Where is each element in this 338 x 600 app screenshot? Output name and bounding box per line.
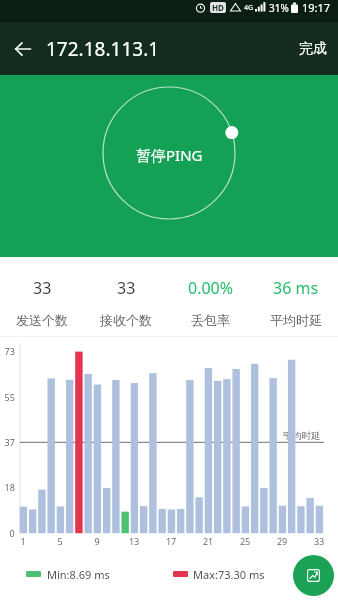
staticText: 丢包率 bbox=[191, 312, 230, 328]
staticText: 平均时延 bbox=[270, 312, 322, 328]
button[interactable]: Show chart details bbox=[293, 555, 334, 596]
button[interactable]: 0.00% bbox=[168, 277, 253, 328]
staticText: 暂停PING bbox=[136, 145, 203, 165]
staticText: 4G bbox=[244, 3, 254, 13]
staticText: HD bbox=[212, 2, 224, 13]
button[interactable]: 完成 bbox=[288, 22, 338, 75]
staticText: 33 bbox=[33, 277, 52, 299]
button[interactable]: 36 ms bbox=[253, 277, 338, 328]
staticText: Min:8.69 ms bbox=[47, 567, 110, 582]
staticText: 19:17 bbox=[302, 0, 331, 15]
button[interactable] bbox=[0, 337, 338, 552]
staticText: 33 bbox=[117, 277, 136, 299]
staticText: 发送个数 bbox=[16, 312, 68, 328]
staticText: 172.18.113.1 bbox=[46, 36, 160, 62]
staticText: 完成 bbox=[299, 40, 327, 58]
staticText: 0.00% bbox=[188, 277, 234, 299]
staticText: 31% bbox=[269, 1, 289, 15]
staticText: 接收个数 bbox=[100, 312, 152, 328]
button[interactable]: 33 bbox=[84, 277, 168, 328]
button[interactable]: 暂停PING bbox=[94, 78, 244, 228]
staticText: 36 ms bbox=[273, 277, 319, 299]
staticText: Max:73.30 ms bbox=[193, 567, 265, 582]
button[interactable]: Back bbox=[0, 22, 46, 75]
button[interactable]: 33 bbox=[0, 277, 84, 328]
